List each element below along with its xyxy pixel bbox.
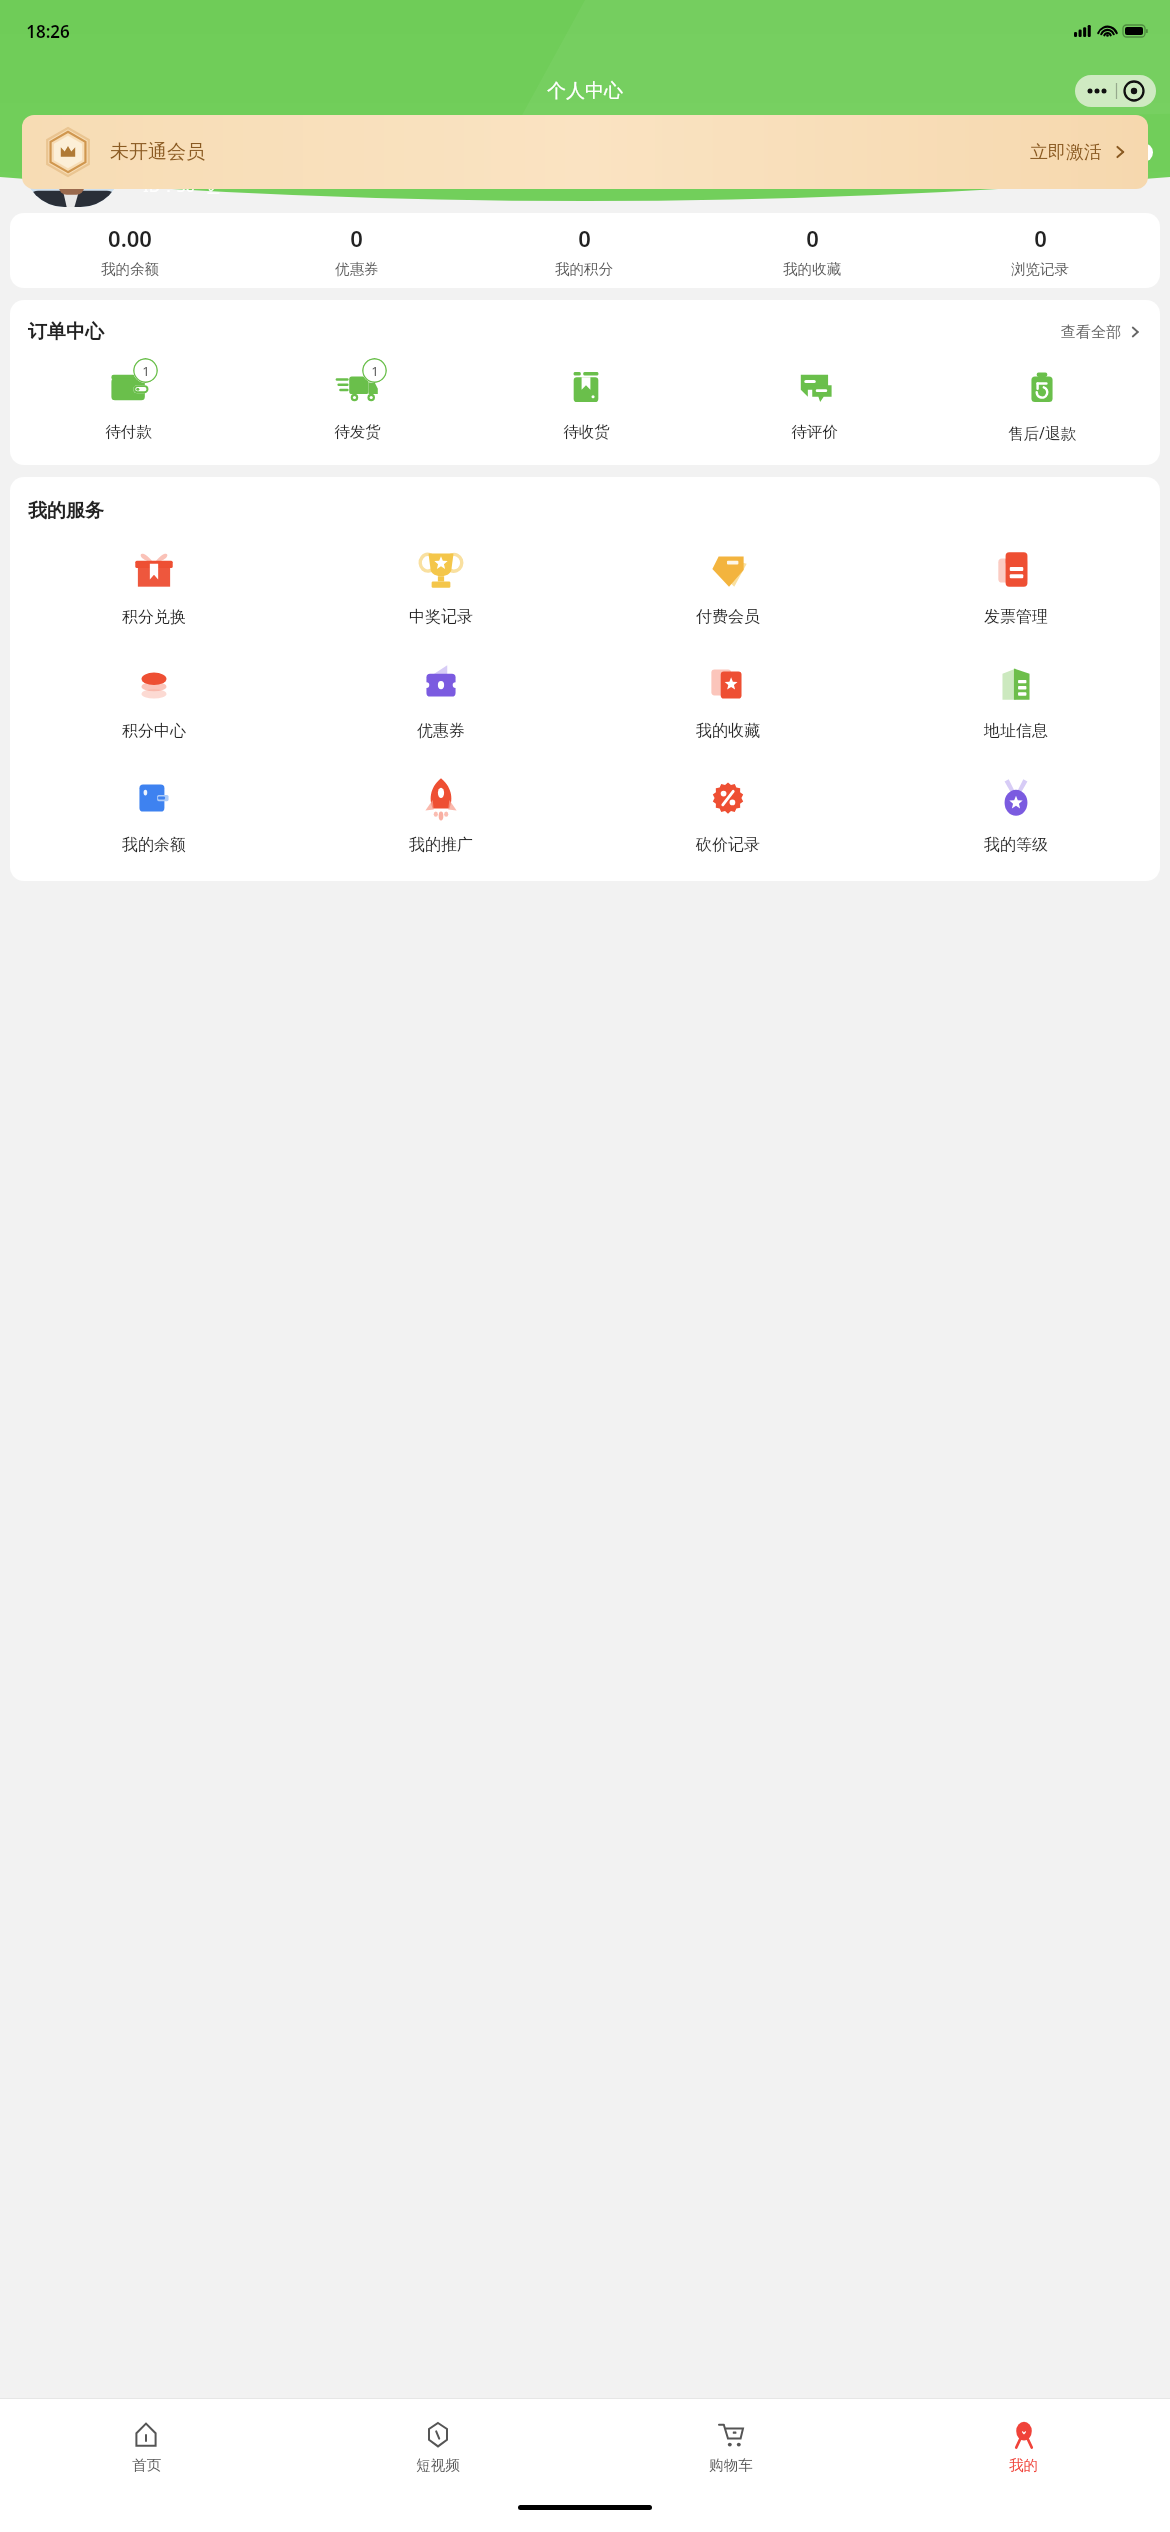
staticText: 18:26: [26, 20, 70, 43]
staticText: 我的余额: [122, 835, 186, 855]
button[interactable]: 我的收藏: [584, 657, 872, 741]
button[interactable]: 我的余额: [10, 771, 297, 855]
staticText: 0: [806, 223, 819, 253]
button[interactable]: 待收货: [472, 360, 700, 442]
button[interactable]: 砍价记录: [584, 771, 872, 855]
staticText: 1: [142, 362, 150, 380]
staticText: 地址信息: [984, 721, 1048, 741]
staticText: 付费会员: [696, 607, 760, 627]
button[interactable]: 1: [14, 360, 243, 442]
staticText: 首页: [132, 2456, 161, 2474]
button[interactable]: 0: [698, 213, 926, 288]
staticText: 购物车: [709, 2456, 753, 2474]
staticText: 0: [1034, 223, 1047, 253]
staticText: 待发货: [334, 422, 381, 442]
staticText: 发票管理: [984, 607, 1048, 627]
button[interactable]: 发票管理: [872, 543, 1160, 627]
button[interactable]: 我的等级: [872, 771, 1160, 855]
button[interactable]: 未开通会员: [22, 115, 1148, 189]
staticText: 0: [578, 223, 591, 253]
button[interactable]: 1: [243, 360, 472, 442]
staticText: 我的积分: [555, 260, 613, 278]
staticText: 待收货: [563, 422, 610, 442]
button[interactable]: 短视频: [292, 2399, 584, 2495]
button[interactable]: 积分兑换: [10, 543, 297, 627]
staticText: 我的收藏: [783, 260, 841, 278]
button[interactable]: More options: [1075, 75, 1156, 107]
button[interactable]: 购物车: [584, 2399, 877, 2495]
staticText: 售后/退款: [1008, 422, 1076, 443]
staticText: 浏览记录: [1011, 260, 1069, 278]
staticText: 砍价记录: [696, 835, 760, 855]
staticText: 我的推广: [409, 835, 473, 855]
staticText: 0: [350, 223, 363, 253]
button[interactable]: 我的推广: [297, 771, 584, 855]
button[interactable]: 0: [243, 213, 470, 288]
staticText: 1: [371, 362, 379, 380]
staticText: ID：56: [143, 175, 195, 197]
staticText: 中奖记录: [409, 607, 473, 627]
staticText: 积分兑换: [122, 607, 186, 627]
button[interactable]: Notifications: [1110, 148, 1148, 186]
staticText: 我的收藏: [696, 721, 760, 741]
staticText: 优惠券: [335, 260, 379, 278]
staticText: 待付款: [105, 422, 152, 442]
staticText: 待评价: [791, 422, 838, 442]
staticText: 订单中心: [28, 320, 104, 344]
staticText: 我的等级: [984, 835, 1048, 855]
button[interactable]: 0.00: [16, 213, 243, 288]
staticText: 我的: [1009, 2456, 1038, 2474]
button[interactable]: 待评价: [700, 360, 928, 442]
staticText: 个人中心: [547, 79, 623, 103]
staticText: 查看全部: [1061, 323, 1121, 342]
button[interactable]: 中奖记录: [297, 543, 584, 627]
button[interactable]: Scan QR code: [1050, 150, 1084, 184]
staticText: 我的余额: [101, 260, 159, 278]
staticText: 立即激活: [1030, 141, 1102, 164]
button[interactable]: 0: [926, 213, 1154, 288]
staticText: 未开通会员: [110, 140, 205, 164]
button[interactable]: 订单中心: [28, 320, 1142, 344]
button[interactable]: Edit profile: [203, 176, 223, 196]
button[interactable]: 积分中心: [10, 657, 297, 741]
button[interactable]: 地址信息: [872, 657, 1160, 741]
staticText: 我的服务: [28, 499, 104, 523]
staticText: 0.00: [108, 223, 152, 253]
button[interactable]: 优惠券: [297, 657, 584, 741]
staticText: 吴雅格: [143, 136, 215, 166]
staticText: 短视频: [416, 2456, 460, 2474]
button[interactable]: 售后/退款: [928, 360, 1156, 443]
button[interactable]: 我的: [877, 2399, 1170, 2495]
button[interactable]: Profile photo: [24, 126, 121, 207]
staticText: 优惠券: [417, 721, 465, 741]
button[interactable]: 付费会员: [584, 543, 872, 627]
button[interactable]: 0: [470, 213, 698, 288]
button[interactable]: 首页: [0, 2399, 292, 2495]
staticText: 积分中心: [122, 721, 186, 741]
